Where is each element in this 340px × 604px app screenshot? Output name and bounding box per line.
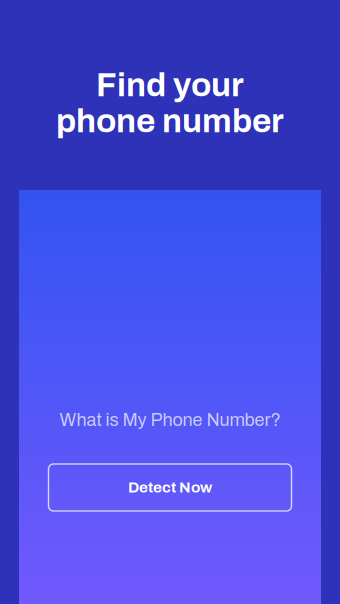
staticText: Find your: [96, 67, 244, 103]
staticText: phone number: [56, 103, 284, 139]
button[interactable]: Detect Now: [48, 464, 291, 511]
staticText: What is My Phone Number?: [59, 410, 280, 430]
staticText: Detect Now: [128, 479, 212, 496]
